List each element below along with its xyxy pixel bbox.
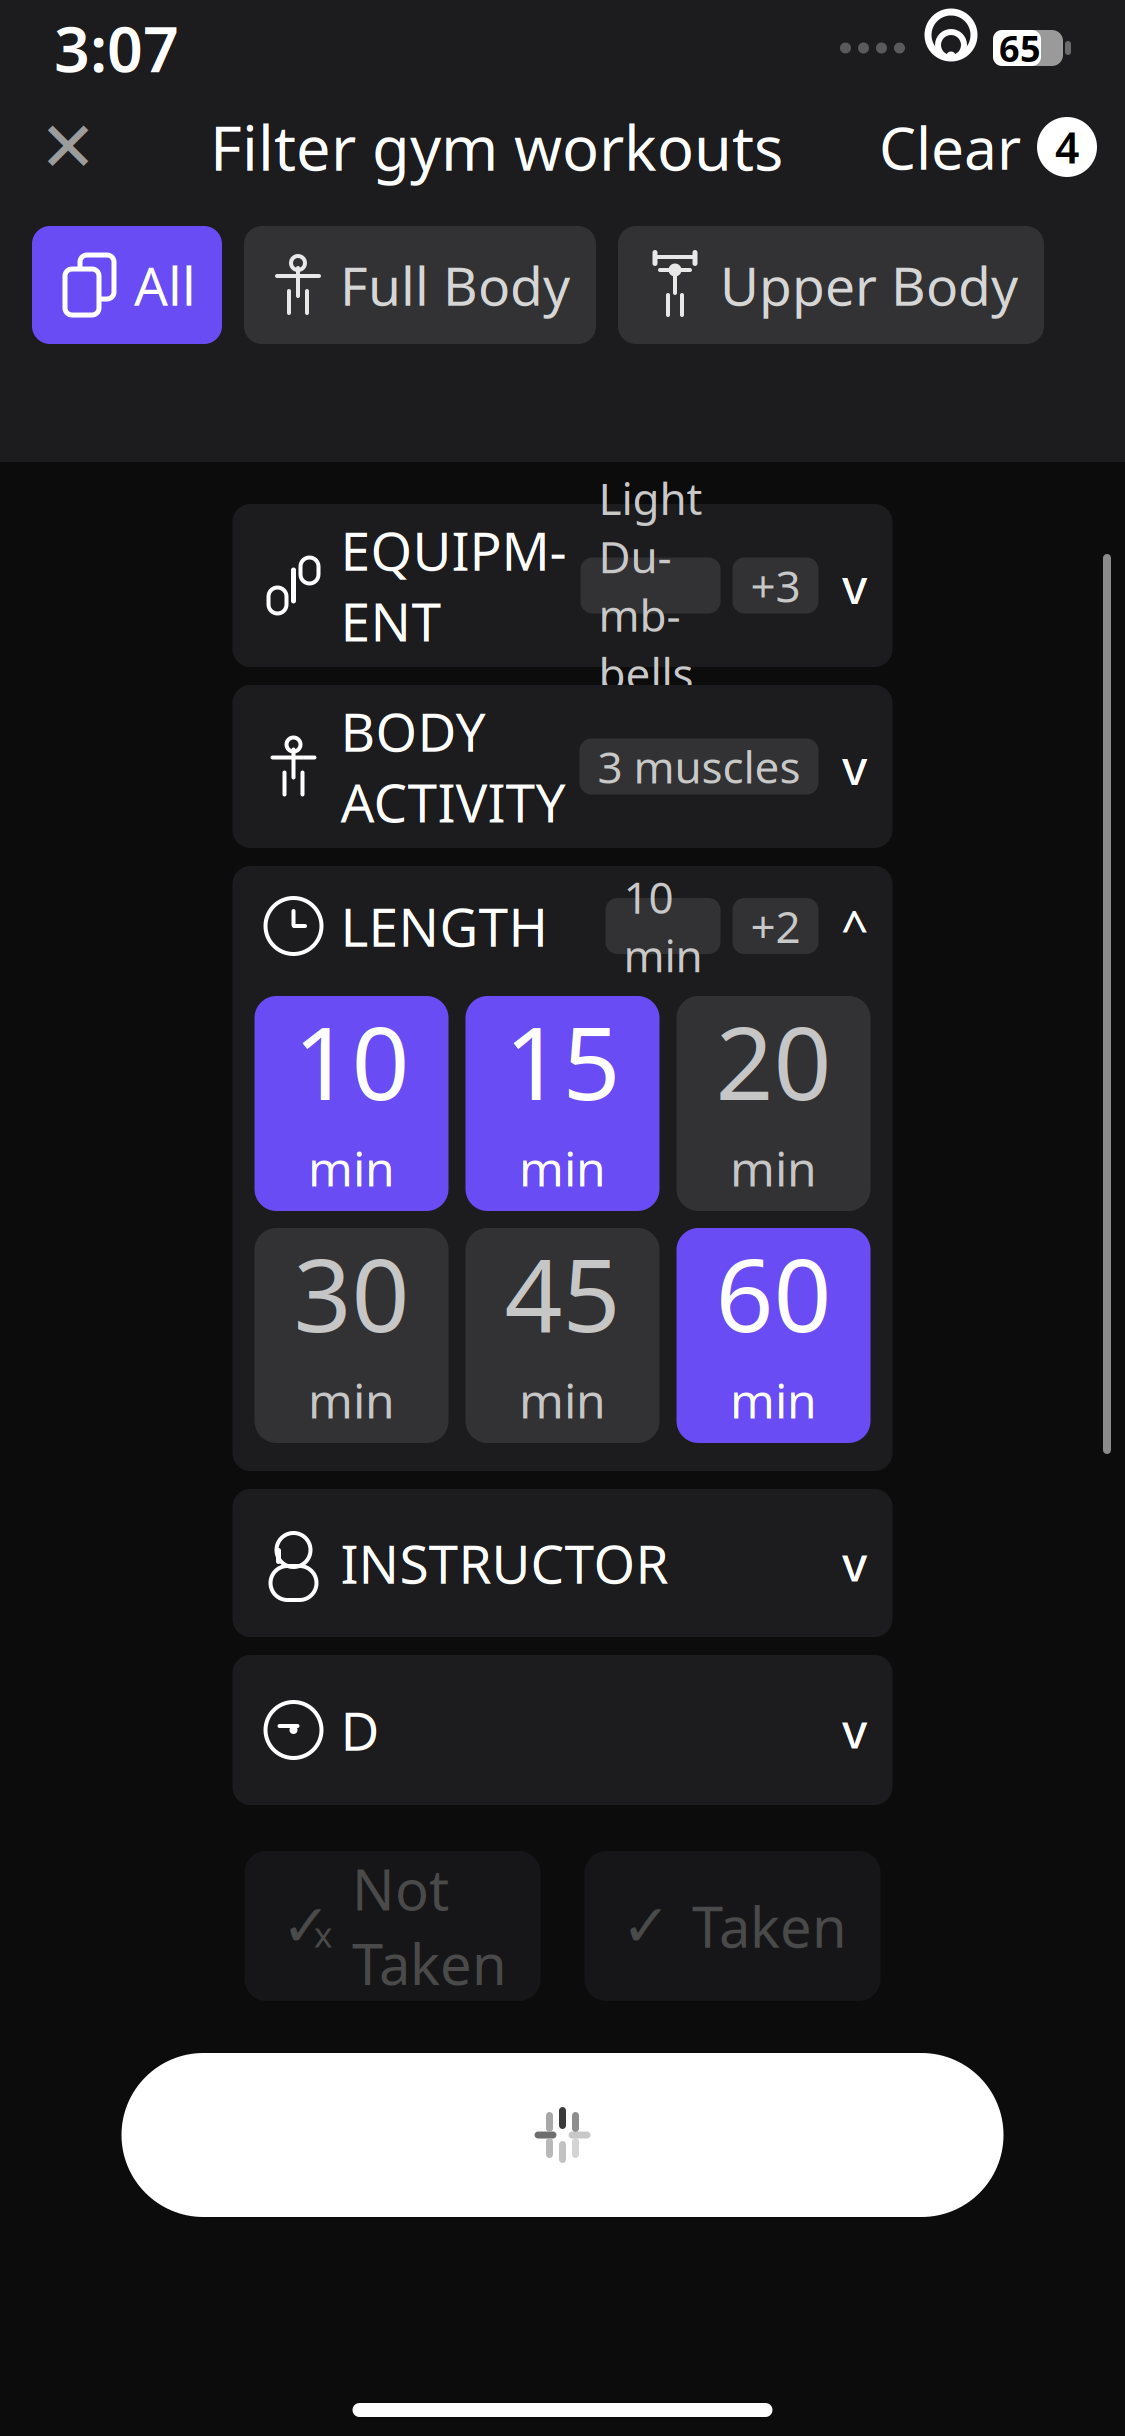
staticText: 15 bbox=[504, 993, 620, 1128]
staticText: BODY ACTIVITY bbox=[340, 696, 565, 837]
staticText: INSTRUCTOR bbox=[340, 1528, 668, 1598]
staticText: x bbox=[314, 1911, 332, 1957]
button[interactable]: 45 bbox=[465, 1228, 659, 1443]
staticText: D bbox=[340, 1695, 379, 1765]
staticText: ^ bbox=[841, 894, 868, 958]
button[interactable]: INSTRUCTOR bbox=[232, 1489, 892, 1637]
staticText: ✓ bbox=[281, 1893, 330, 1959]
button[interactable]: Clear bbox=[879, 101, 1097, 193]
staticText: Taken bbox=[692, 1889, 847, 1963]
button[interactable]: Full Body bbox=[244, 226, 596, 344]
staticText: +2 bbox=[750, 897, 800, 955]
staticText: 45 bbox=[504, 1225, 620, 1360]
button[interactable]: 10 bbox=[254, 996, 448, 1211]
staticText: Not Taken bbox=[352, 1852, 507, 2000]
staticText: 3:07 bbox=[54, 6, 179, 90]
button[interactable]: BODY ACTIVITY bbox=[232, 685, 892, 848]
staticText: EQUIPMENT bbox=[340, 515, 566, 656]
staticText: 20 bbox=[715, 993, 831, 1128]
button[interactable]: D bbox=[232, 1655, 892, 1805]
staticText: min bbox=[730, 1368, 817, 1432]
staticText: min bbox=[730, 1136, 817, 1200]
staticText: 4 bbox=[1055, 119, 1079, 175]
staticText: Clear bbox=[879, 108, 1021, 186]
staticText: Filter gym workouts bbox=[210, 106, 783, 188]
button[interactable]: 60 bbox=[676, 1228, 870, 1443]
staticText: Upper Body bbox=[720, 250, 1018, 320]
staticText: Light Dumbbells bbox=[598, 469, 702, 702]
staticText: ✓ bbox=[621, 1893, 670, 1959]
button[interactable]: Close bbox=[22, 101, 114, 193]
staticText: +3 bbox=[750, 556, 800, 615]
button[interactable]: All bbox=[32, 226, 222, 344]
staticText: min bbox=[519, 1368, 606, 1432]
staticText: v bbox=[842, 554, 867, 617]
staticText: 10 bbox=[293, 993, 409, 1128]
staticText: 3 muscles bbox=[597, 737, 800, 796]
button[interactable]: EQUIPMENT bbox=[232, 504, 892, 667]
staticText: min bbox=[308, 1368, 395, 1432]
button[interactable]: Upper Body bbox=[618, 226, 1044, 344]
button[interactable]: LENGTH bbox=[232, 866, 892, 986]
staticText: LENGTH bbox=[340, 891, 548, 961]
staticText: min bbox=[519, 1136, 606, 1200]
staticText: Full Body bbox=[340, 250, 570, 320]
staticText: ✕ bbox=[39, 108, 97, 186]
button[interactable]: 20 bbox=[676, 996, 870, 1211]
button[interactable]: ✓ bbox=[584, 1851, 880, 2001]
staticText: v bbox=[842, 1698, 867, 1762]
button[interactable]: 15 bbox=[465, 996, 659, 1211]
staticText: 30 bbox=[293, 1225, 409, 1360]
staticText: 60 bbox=[715, 1225, 831, 1360]
staticText: v bbox=[842, 735, 867, 798]
button[interactable]: 30 bbox=[254, 1228, 448, 1443]
staticText: 10 min bbox=[623, 868, 702, 984]
staticText: min bbox=[308, 1136, 395, 1200]
staticText: 65 bbox=[999, 24, 1041, 72]
staticText: All bbox=[134, 250, 196, 320]
button[interactable]: ✓ bbox=[244, 1851, 540, 2001]
staticText: v bbox=[842, 1531, 867, 1595]
